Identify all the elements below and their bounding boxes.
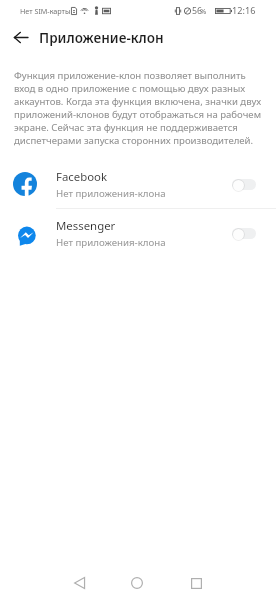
button[interactable]: Messenger [0,209,276,257]
button[interactable]: Недавние приложения [181,568,211,598]
staticText: Facebook [56,169,108,185]
staticText: Приложение-клон [39,29,164,47]
button[interactable]: Переключатель Facebook [232,177,256,191]
staticText: Функция приложение-клон позволяет выполн… [14,69,262,147]
staticText: 56 [192,5,203,17]
staticText: Нет приложения-клона [56,236,166,249]
button[interactable]: Переключатель Messenger [232,226,256,240]
staticText: 12:16 [232,4,256,17]
staticText: % [200,6,207,16]
button[interactable]: Назад [64,568,94,598]
staticText: Нет SIM-карты [20,6,71,16]
staticText: Нет приложения-клона [56,187,166,200]
button[interactable]: Facebook [0,160,276,208]
staticText: Messenger [56,218,116,234]
button[interactable]: Назад [7,23,35,51]
button[interactable]: Главный экран [122,568,152,598]
